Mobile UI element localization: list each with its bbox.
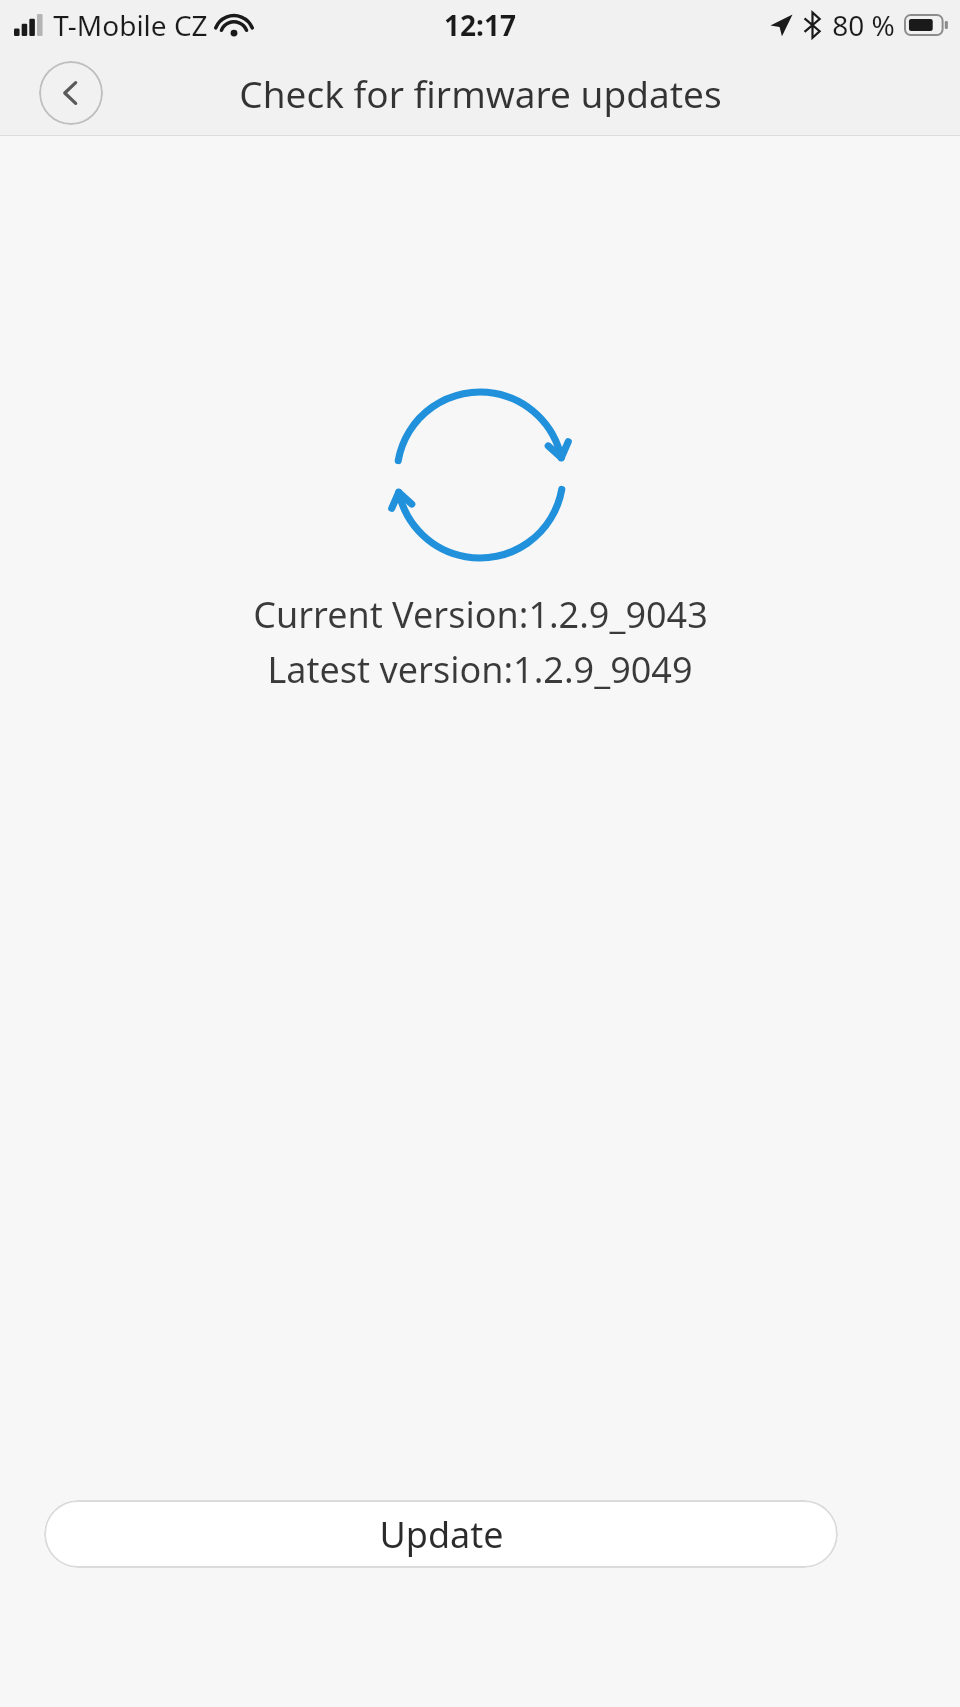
staticText: 80 % bbox=[832, 6, 895, 44]
button[interactable]: Update bbox=[44, 1500, 838, 1568]
staticText: Check for firmware updates bbox=[239, 68, 722, 118]
staticText: T-Mobile CZ bbox=[53, 6, 208, 44]
staticText: 12:17 bbox=[444, 6, 516, 44]
staticText: Update bbox=[379, 1510, 504, 1559]
staticText: Latest version:1.2.9_9049 bbox=[267, 645, 693, 694]
staticText: Current Version:1.2.9_9043 bbox=[253, 590, 708, 639]
button[interactable]: Back bbox=[39, 61, 103, 125]
